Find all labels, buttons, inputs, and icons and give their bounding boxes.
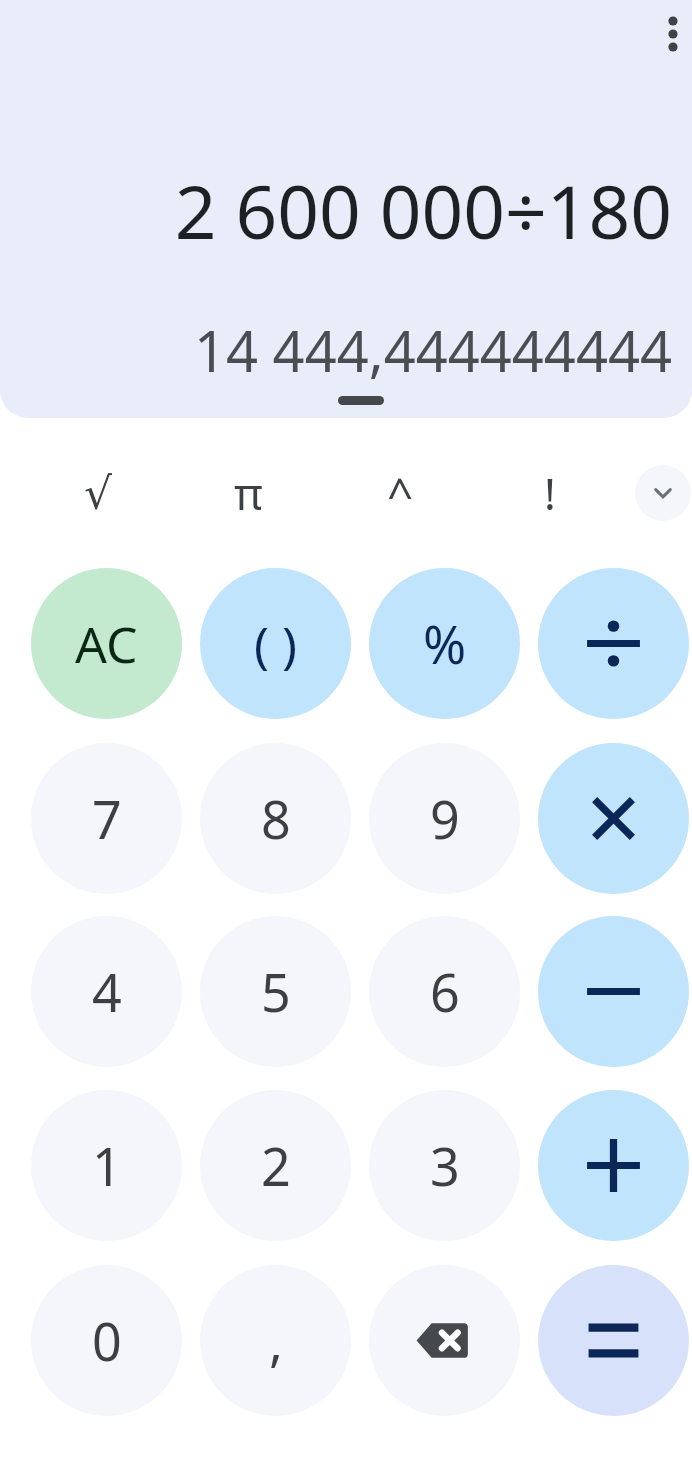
- staticText: 2: [261, 1130, 291, 1201]
- button[interactable]: ,: [200, 1265, 351, 1416]
- button[interactable]: Equals: [538, 1265, 689, 1416]
- button[interactable]: Backspace: [369, 1265, 520, 1416]
- staticText: !: [544, 463, 556, 523]
- button[interactable]: !: [508, 451, 592, 535]
- button[interactable]: Divide: [538, 568, 689, 719]
- button[interactable]: Expand history: [338, 396, 384, 405]
- staticText: ,: [269, 1305, 283, 1376]
- button[interactable]: 4: [31, 916, 182, 1067]
- staticText: ^: [387, 462, 414, 525]
- button[interactable]: AC: [31, 568, 182, 719]
- button[interactable]: 9: [369, 743, 520, 894]
- button[interactable]: ^: [358, 451, 442, 535]
- staticText: ( ): [254, 610, 297, 678]
- button[interactable]: Multiply: [538, 743, 689, 894]
- button[interactable]: Add: [538, 1090, 689, 1241]
- button[interactable]: 6: [369, 916, 520, 1067]
- staticText: 0: [92, 1305, 122, 1376]
- button[interactable]: ( ): [200, 568, 351, 719]
- staticText: 8: [261, 783, 291, 854]
- button[interactable]: 2: [200, 1090, 351, 1241]
- staticText: AC: [75, 610, 138, 678]
- button[interactable]: 5: [200, 916, 351, 1067]
- staticText: %: [423, 608, 467, 679]
- button[interactable]: %: [369, 568, 520, 719]
- staticText: √: [84, 468, 113, 519]
- staticText: 14 444,444444444: [193, 312, 672, 388]
- button[interactable]: 3: [369, 1090, 520, 1241]
- staticText: 3: [430, 1130, 460, 1201]
- staticText: 2 600 000÷180: [174, 161, 672, 260]
- button[interactable]: 1: [31, 1090, 182, 1241]
- staticText: 6: [430, 956, 460, 1027]
- staticText: 5: [261, 956, 291, 1027]
- staticText: 7: [92, 783, 122, 854]
- staticText: 1: [92, 1130, 122, 1201]
- button[interactable]: π: [206, 451, 290, 535]
- button[interactable]: √: [56, 451, 140, 535]
- button[interactable]: 7: [31, 743, 182, 894]
- staticText: π: [234, 463, 263, 523]
- staticText: 9: [430, 783, 460, 854]
- button[interactable]: 0: [31, 1265, 182, 1416]
- button[interactable]: Show more functions: [635, 465, 691, 521]
- button[interactable]: More options: [654, 0, 692, 68]
- button[interactable]: Subtract: [538, 916, 689, 1067]
- button[interactable]: 8: [200, 743, 351, 894]
- staticText: 4: [92, 956, 122, 1027]
